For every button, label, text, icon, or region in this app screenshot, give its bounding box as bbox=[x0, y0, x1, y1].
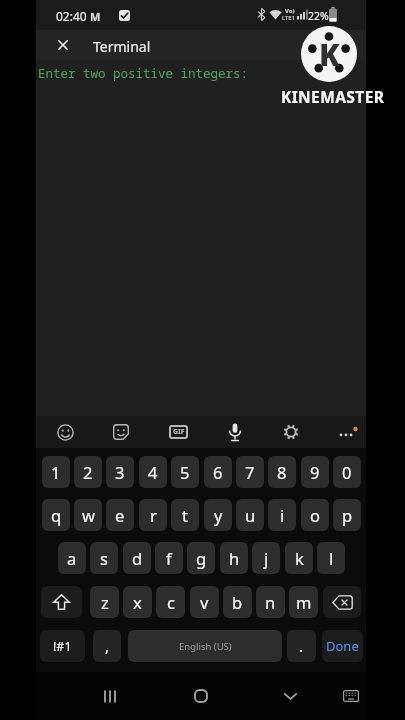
button[interactable] bbox=[110, 421, 132, 443]
button[interactable]: 7 bbox=[236, 456, 264, 488]
staticText: 02:40 bbox=[56, 8, 87, 24]
staticText: Done bbox=[326, 637, 359, 655]
button[interactable] bbox=[54, 421, 76, 443]
staticText: r bbox=[150, 504, 157, 526]
staticText: 6 bbox=[213, 461, 223, 483]
staticText: 22% bbox=[308, 9, 329, 23]
button[interactable]: 4 bbox=[139, 456, 167, 488]
staticText: d bbox=[132, 547, 143, 569]
button[interactable]: v bbox=[190, 586, 219, 618]
button[interactable]: g bbox=[187, 542, 215, 574]
staticText: t bbox=[182, 504, 188, 526]
button[interactable]: w bbox=[74, 499, 102, 531]
button[interactable]: , bbox=[93, 630, 121, 662]
button[interactable]: m bbox=[289, 586, 318, 618]
button[interactable] bbox=[336, 682, 366, 710]
button[interactable]: x bbox=[123, 586, 152, 618]
button[interactable]: !#1 bbox=[40, 630, 85, 662]
staticText: . bbox=[299, 636, 304, 656]
button[interactable]: 0 bbox=[333, 456, 361, 488]
staticText: g bbox=[196, 547, 207, 569]
staticText: Terminal bbox=[93, 37, 151, 56]
button[interactable]: . bbox=[287, 630, 316, 662]
staticText: u bbox=[245, 504, 256, 526]
button[interactable]: l bbox=[317, 542, 345, 574]
staticText: z bbox=[101, 591, 109, 613]
button[interactable] bbox=[52, 34, 74, 56]
button[interactable]: k bbox=[285, 542, 313, 574]
staticText: l bbox=[329, 547, 334, 569]
staticText: LTE1 bbox=[282, 14, 296, 22]
staticText: 4 bbox=[148, 461, 158, 483]
button[interactable]: Done bbox=[322, 630, 363, 662]
button[interactable]: o bbox=[301, 499, 329, 531]
staticText: 5 bbox=[180, 461, 190, 483]
staticText: b bbox=[232, 591, 243, 613]
staticText: j bbox=[264, 547, 269, 569]
button[interactable] bbox=[41, 586, 82, 618]
staticText: s bbox=[100, 547, 108, 569]
staticText: !#1 bbox=[53, 638, 72, 655]
button[interactable]: 3 bbox=[106, 456, 134, 488]
button[interactable]: 8 bbox=[268, 456, 296, 488]
staticText: v bbox=[200, 591, 209, 613]
staticText: q bbox=[51, 504, 62, 526]
staticText: n bbox=[265, 591, 276, 613]
button[interactable]: 1 bbox=[42, 456, 70, 488]
button[interactable] bbox=[224, 420, 246, 444]
button[interactable]: z bbox=[90, 586, 119, 618]
staticText: Enter two positive integers: bbox=[38, 65, 249, 82]
staticText: English (US) bbox=[179, 640, 232, 653]
button[interactable]: English (US) bbox=[128, 630, 282, 662]
button[interactable] bbox=[323, 586, 361, 618]
button[interactable]: 2 bbox=[74, 456, 102, 488]
staticText: w bbox=[82, 504, 95, 526]
button[interactable]: r bbox=[139, 499, 167, 531]
staticText: 3 bbox=[115, 461, 125, 483]
staticText: KINEMASTER bbox=[281, 86, 385, 106]
button[interactable] bbox=[95, 681, 125, 711]
staticText: , bbox=[105, 636, 110, 656]
button[interactable] bbox=[280, 421, 302, 443]
staticText: a bbox=[67, 547, 77, 569]
button[interactable]: y bbox=[204, 499, 232, 531]
button[interactable]: e bbox=[106, 499, 134, 531]
staticText: k bbox=[295, 547, 304, 569]
button[interactable]: q bbox=[42, 499, 70, 531]
button[interactable]: t bbox=[171, 499, 199, 531]
staticText: 2 bbox=[83, 461, 93, 483]
staticText: 0 bbox=[342, 461, 352, 483]
button[interactable]: c bbox=[156, 586, 185, 618]
button[interactable]: n bbox=[256, 586, 285, 618]
staticText: m bbox=[296, 591, 312, 613]
button[interactable]: f bbox=[155, 542, 183, 574]
button[interactable]: p bbox=[333, 499, 361, 531]
button[interactable]: GIF bbox=[169, 425, 188, 439]
staticText: x bbox=[133, 591, 142, 613]
staticText: f bbox=[166, 547, 172, 569]
staticText: o bbox=[310, 504, 320, 526]
button[interactable] bbox=[186, 681, 216, 711]
staticText: K bbox=[319, 34, 340, 75]
button[interactable]: j bbox=[252, 542, 280, 574]
button[interactable]: s bbox=[90, 542, 118, 574]
button[interactable]: d bbox=[123, 542, 151, 574]
button[interactable]: 5 bbox=[171, 456, 199, 488]
staticText: p bbox=[342, 504, 353, 526]
staticText: 1 bbox=[51, 461, 61, 483]
button[interactable] bbox=[275, 681, 305, 711]
staticText: e bbox=[115, 504, 125, 526]
button[interactable] bbox=[336, 421, 360, 443]
button[interactable]: i bbox=[268, 499, 296, 531]
button[interactable]: h bbox=[220, 542, 248, 574]
button[interactable]: 6 bbox=[204, 456, 232, 488]
button[interactable]: b bbox=[223, 586, 252, 618]
staticText: 7 bbox=[245, 461, 255, 483]
button[interactable]: 9 bbox=[301, 456, 329, 488]
button[interactable]: a bbox=[58, 542, 86, 574]
staticText: 8 bbox=[277, 461, 287, 483]
staticText: y bbox=[214, 504, 223, 526]
staticText: i bbox=[280, 504, 285, 526]
button[interactable]: u bbox=[236, 499, 264, 531]
staticText: c bbox=[167, 591, 175, 613]
